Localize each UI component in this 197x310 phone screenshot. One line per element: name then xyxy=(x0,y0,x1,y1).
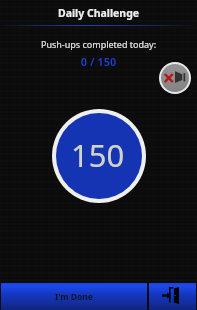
staticText: I'm Done xyxy=(55,291,93,303)
staticText: Daily Challenge xyxy=(58,6,140,20)
button[interactable]: Mute sound xyxy=(161,64,189,92)
staticText: 150 xyxy=(71,134,125,176)
button[interactable]: 150 xyxy=(56,113,142,199)
button[interactable]: I'm Done xyxy=(1,283,147,310)
button[interactable]: Exit xyxy=(149,283,196,310)
staticText: 0 / 150 xyxy=(0,54,197,69)
staticText: Push-ups completed today: xyxy=(0,38,197,50)
